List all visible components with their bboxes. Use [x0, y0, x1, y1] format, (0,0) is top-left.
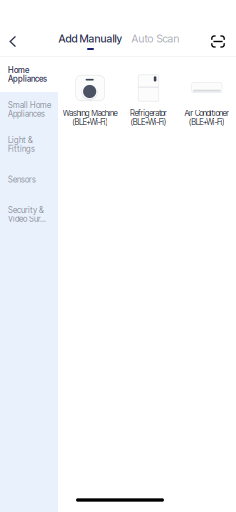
- staticText: (BLE+Wi-Fi): [72, 117, 108, 127]
- staticText: (BLE+Wi-Fi): [189, 117, 225, 127]
- button[interactable]: Scan QR code: [206, 29, 230, 53]
- staticText: Fittings: [8, 144, 35, 154]
- staticText: Auto Scan: [131, 32, 179, 45]
- staticText: Add Manually: [58, 32, 122, 45]
- staticText: Appliances: [8, 74, 47, 84]
- button[interactable]: Small Home: [0, 92, 58, 127]
- button[interactable]: Sensors: [0, 162, 58, 197]
- button[interactable]: Refrigerator: [119, 57, 178, 133]
- staticText: Washing Machine: [63, 108, 117, 118]
- staticText: Air Conditioner: [184, 108, 229, 118]
- button[interactable]: Add Manually: [58, 33, 122, 50]
- button[interactable]: Home: [0, 57, 58, 92]
- staticText: Video Sur...: [8, 214, 46, 224]
- button[interactable]: Light &: [0, 127, 58, 162]
- button[interactable]: Washing Machine: [61, 57, 119, 133]
- staticText: Home: [8, 65, 29, 75]
- staticText: Security &: [8, 205, 44, 215]
- staticText: Refrigerator: [130, 108, 167, 118]
- button[interactable]: Security &: [0, 197, 58, 232]
- button[interactable]: Back: [1, 29, 25, 53]
- staticText: Small Home: [8, 100, 51, 110]
- staticText: (BLE+Wi-Fi): [130, 117, 167, 127]
- staticText: Appliances: [8, 109, 45, 119]
- button[interactable]: Auto Scan: [131, 33, 179, 50]
- staticText: Sensors: [8, 175, 36, 184]
- button[interactable]: Air Conditioner: [178, 57, 236, 133]
- staticText: Light &: [8, 135, 33, 145]
